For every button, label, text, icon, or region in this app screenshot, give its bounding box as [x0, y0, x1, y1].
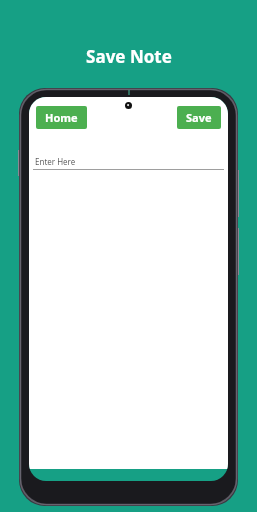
staticText: Save [186, 110, 212, 125]
staticText: Save Note [86, 45, 172, 68]
other: Front camera [125, 102, 132, 109]
button[interactable]: Home [36, 106, 87, 129]
staticText: Enter Here [35, 156, 76, 167]
staticText: Home [45, 110, 78, 125]
button[interactable]: Save [177, 106, 221, 129]
button[interactable]: Enter Here [33, 156, 224, 170]
